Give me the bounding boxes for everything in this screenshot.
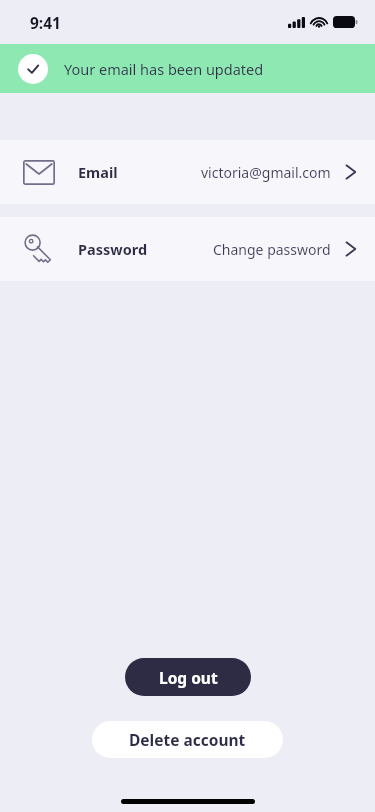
staticText: Email [78,162,118,182]
other: Email [23,160,55,185]
other: Password [23,233,55,265]
button[interactable]: Delete account [92,721,283,758]
staticText: Your email has been updated [64,59,264,79]
button[interactable]: Log out [125,658,251,696]
staticText: 9:41 [30,12,61,33]
staticText: Change password [213,240,331,259]
button[interactable]: Your email has been updated [0,44,375,93]
button[interactable]: Email [0,140,375,204]
staticText: Password [78,239,148,259]
staticText: Log out [159,667,218,688]
staticText: Delete account [129,729,246,750]
other: Open Password [345,240,357,258]
other: Open Email [345,163,357,181]
staticText: victoria@gmail.com [201,163,331,182]
button[interactable]: Password [0,217,375,281]
